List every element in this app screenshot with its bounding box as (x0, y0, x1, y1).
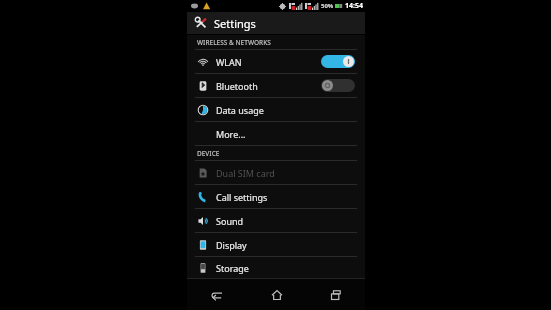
staticText: Call settings (216, 191, 268, 203)
staticText: WIRELESS & NETWORKS (197, 38, 271, 47)
staticText: Bluetooth (216, 80, 258, 92)
staticText: WLAN (216, 56, 242, 68)
button[interactable]: Settings (187, 12, 365, 34)
staticText: Data usage (216, 104, 264, 116)
button[interactable]: Back (187, 279, 247, 310)
button[interactable]: Dual SIM card (187, 161, 365, 184)
button[interactable]: Recent apps (306, 279, 365, 310)
button[interactable]: On (321, 55, 355, 68)
button[interactable]: Sound (187, 209, 365, 232)
staticText: DEVICE (197, 149, 220, 158)
button[interactable]: Home (247, 279, 306, 310)
staticText: Storage (216, 262, 249, 274)
button[interactable]: Display (187, 233, 365, 256)
staticText: 14:54 (345, 1, 363, 11)
staticText: 50% (321, 2, 334, 10)
button[interactable]: Call settings (187, 185, 365, 208)
staticText: Sound (216, 215, 244, 227)
staticText: Settings (214, 16, 256, 31)
button[interactable]: Data usage (187, 98, 365, 121)
button[interactable]: More... (187, 122, 365, 145)
staticText: Display (216, 239, 247, 251)
button[interactable]: Bluetooth (187, 74, 365, 97)
button[interactable]: WLAN (187, 50, 365, 73)
staticText: More... (216, 128, 246, 140)
staticText: Dual SIM card (216, 167, 275, 179)
button[interactable]: Off (321, 79, 355, 92)
button[interactable]: Storage (187, 257, 365, 278)
